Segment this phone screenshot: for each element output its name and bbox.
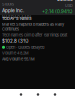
staticText: NASDAQ AAPL	[2, 14, 32, 19]
staticText: TODAY'S NEWS	[2, 16, 32, 21]
staticText: Open · Quotes delayed	[6, 45, 44, 50]
button[interactable]: Play	[33, 89, 43, 100]
staticText: Market Snapshot Broadens as Rally Contin…	[2, 22, 64, 31]
button[interactable]: Next	[50, 89, 60, 100]
staticText: $102.8 (3%)	[2, 38, 29, 44]
staticText: USD	[65, 3, 73, 8]
staticText: +2.14 (0.94%)	[42, 9, 73, 14]
staticText: Tech names climb after earnings beat	[2, 32, 67, 37]
button[interactable]: Previous	[16, 89, 26, 100]
staticText: Apple Inc.	[2, 7, 24, 13]
staticText: Volume 48.2M	[2, 51, 29, 55]
staticText: Stocks	[2, 2, 14, 6]
staticText: 228.52	[57, 0, 73, 2]
staticText: Avg Volume 55.1M	[2, 56, 35, 61]
